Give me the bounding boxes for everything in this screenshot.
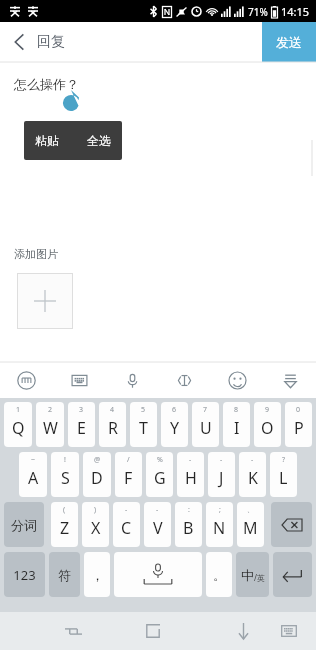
button[interactable]: 8 <box>223 402 250 447</box>
staticText: 分词 <box>11 517 37 533</box>
button[interactable]: - <box>239 452 266 497</box>
staticText: N <box>213 517 226 539</box>
button[interactable]: 3 <box>68 402 95 447</box>
button[interactable]: Hide keyboard <box>226 614 260 648</box>
staticText: Z <box>60 517 70 539</box>
staticText: 0 <box>296 405 301 415</box>
button[interactable]: 6 <box>161 402 188 447</box>
button[interactable]: 2 <box>36 402 64 447</box>
staticText: M <box>243 517 258 539</box>
button[interactable]: Voice input <box>114 362 150 398</box>
staticText: 5 <box>141 405 146 415</box>
staticText: R <box>108 417 118 439</box>
button[interactable]: 符 <box>49 552 80 597</box>
button[interactable]: Input method <box>8 362 44 398</box>
button[interactable]: - <box>208 452 235 497</box>
staticText: ( <box>63 505 66 515</box>
button[interactable]: ( <box>51 502 78 547</box>
staticText: 1 <box>16 405 21 415</box>
button[interactable]: 0 <box>285 402 312 447</box>
staticText: G <box>154 467 166 489</box>
staticText: 怎么操作？ <box>14 76 79 92</box>
button[interactable]: Space <box>114 552 202 597</box>
staticText: - <box>251 455 254 465</box>
button[interactable]: ) <box>82 502 109 547</box>
button[interactable]: 4 <box>99 402 126 447</box>
button[interactable]: % <box>146 452 173 497</box>
staticText: T <box>139 417 148 439</box>
staticText: B <box>183 517 194 539</box>
button[interactable]: Switch <box>56 614 90 648</box>
staticText: L <box>279 467 288 489</box>
staticText: P <box>294 417 304 439</box>
button[interactable]: - <box>177 452 204 497</box>
button[interactable]: 、 <box>237 502 264 547</box>
button[interactable]: Back <box>0 22 75 62</box>
button[interactable]: Emoji <box>219 362 255 398</box>
button[interactable]: ， <box>84 552 110 597</box>
button[interactable]: 中 <box>236 552 269 597</box>
button[interactable]: 分词 <box>4 502 44 547</box>
button[interactable]: ! <box>51 452 79 497</box>
staticText: - <box>125 505 128 515</box>
staticText: ， <box>91 567 104 583</box>
button[interactable]: ? <box>270 452 297 497</box>
staticText: K <box>248 467 258 489</box>
staticText: - <box>189 455 192 465</box>
button[interactable]: - <box>113 502 140 547</box>
button[interactable]: Cursor control <box>166 362 202 398</box>
staticText: 中 <box>241 567 254 583</box>
staticText: Q <box>12 417 25 439</box>
button[interactable]: Change keyboard <box>272 614 306 648</box>
staticText: 符 <box>58 567 71 583</box>
button[interactable]: 粘贴 <box>25 125 69 156</box>
staticText: / <box>127 455 130 465</box>
button[interactable]: Enter <box>273 552 312 597</box>
staticText: 发送 <box>276 34 302 50</box>
staticText: ~ <box>31 455 36 465</box>
button[interactable]: 5 <box>130 402 157 447</box>
button[interactable]: Add image <box>17 273 73 329</box>
staticText: 回复 <box>37 33 65 51</box>
staticText: 4 <box>110 405 115 415</box>
button[interactable]: 7 <box>192 402 219 447</box>
button[interactable]: 1 <box>4 402 32 447</box>
button[interactable]: Backspace <box>271 502 312 547</box>
button[interactable]: 123 <box>4 552 45 597</box>
staticText: 、 <box>247 505 254 514</box>
staticText: @ <box>94 455 101 465</box>
button[interactable]: 全选 <box>77 125 121 156</box>
staticText: 8 <box>234 405 239 415</box>
button[interactable]: - <box>144 502 171 547</box>
button[interactable]: ; <box>206 502 233 547</box>
staticText: 9 <box>265 405 270 415</box>
staticText: E <box>77 417 86 439</box>
button[interactable]: 发送 <box>262 22 316 62</box>
staticText: : <box>188 505 190 515</box>
button[interactable]: Keyboard layout <box>61 362 97 398</box>
staticText: ) <box>94 505 97 515</box>
staticText: 。 <box>213 567 226 583</box>
staticText: 2 <box>48 405 53 415</box>
staticText: 6 <box>172 405 177 415</box>
staticText: ! <box>64 455 66 465</box>
staticText: A <box>28 467 39 489</box>
staticText: 粘贴 <box>35 133 59 148</box>
button[interactable]: ~ <box>19 452 47 497</box>
staticText: V <box>153 517 163 539</box>
staticText: 全选 <box>87 133 111 148</box>
staticText: J <box>219 467 224 489</box>
staticText: ? <box>282 455 286 465</box>
staticText: F <box>124 467 133 489</box>
staticText: 71% <box>248 5 268 19</box>
button[interactable]: 9 <box>254 402 281 447</box>
button[interactable]: Collapse keyboard <box>272 362 308 398</box>
button[interactable]: @ <box>83 452 111 497</box>
button[interactable]: Home <box>136 614 170 648</box>
staticText: / <box>254 572 257 583</box>
staticText: O <box>261 417 274 439</box>
button[interactable]: / <box>115 452 142 497</box>
staticText: - <box>220 455 223 465</box>
button[interactable]: : <box>175 502 202 547</box>
button[interactable]: 。 <box>206 552 232 597</box>
